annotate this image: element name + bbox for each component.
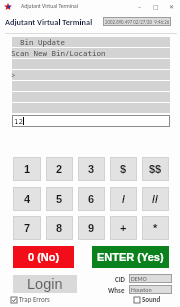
button[interactable]: Trap Errors xyxy=(11,295,50,304)
staticText: 3 xyxy=(88,163,95,175)
button[interactable]: / xyxy=(110,187,137,211)
button[interactable]: $$ xyxy=(142,157,169,181)
staticText: 9 xyxy=(88,222,95,234)
staticText: Bin Update xyxy=(11,37,65,47)
staticText: Adjutant Virtual Terminal xyxy=(5,17,93,27)
staticText: CID xyxy=(115,275,125,284)
staticText: 6 xyxy=(88,193,95,205)
button[interactable]: // xyxy=(142,187,169,211)
button[interactable]: 9 xyxy=(78,216,105,240)
staticText: ENTER (Yes) xyxy=(97,251,164,263)
staticText: + xyxy=(120,222,127,234)
button[interactable]: 4 xyxy=(13,187,41,211)
button[interactable]: Maximize xyxy=(148,0,164,13)
staticText: Houston xyxy=(131,286,152,293)
staticText: $$ xyxy=(149,163,162,175)
button[interactable]: 1 xyxy=(13,157,41,181)
staticText: / xyxy=(122,193,126,205)
staticText: Adjutant Virtual Terminal xyxy=(21,3,79,10)
staticText: > xyxy=(11,70,16,80)
button[interactable]: 12 xyxy=(12,115,170,127)
staticText: 2002.890.497 02/27/20 9:46:26 xyxy=(105,19,170,25)
button[interactable]: 2 xyxy=(46,157,73,181)
staticText: Whse xyxy=(108,286,125,295)
button[interactable]: Close xyxy=(164,0,180,13)
staticText: 4 xyxy=(24,193,31,205)
staticText: 2 xyxy=(56,163,63,175)
staticText: 7 xyxy=(24,222,31,234)
staticText: 1 xyxy=(24,163,31,175)
staticText: 8 xyxy=(56,222,63,234)
button[interactable]: Minimize xyxy=(132,0,148,13)
staticText: Sound xyxy=(142,295,161,304)
staticText: □ xyxy=(153,3,159,10)
staticText: 5 xyxy=(56,193,63,205)
staticText: DEMO xyxy=(131,275,147,282)
staticText: $ xyxy=(120,163,127,175)
button[interactable]: * xyxy=(142,216,169,240)
button[interactable]: 5 xyxy=(46,187,73,211)
staticText: Trap Errors xyxy=(19,295,50,304)
staticText: 0 (No) xyxy=(28,251,60,263)
staticText: – xyxy=(138,3,142,11)
button[interactable]: Login xyxy=(13,275,77,293)
button[interactable]: 7 xyxy=(13,216,41,240)
staticText: Scan New Bin/Location xyxy=(11,48,106,58)
staticText: Login xyxy=(27,276,63,292)
staticText: * xyxy=(153,222,158,234)
button[interactable]: 6 xyxy=(78,187,105,211)
staticText: 12 xyxy=(14,116,23,126)
button[interactable]: 0 (No) xyxy=(13,246,74,268)
button[interactable]: Sound xyxy=(134,295,161,304)
button[interactable]: ENTER (Yes) xyxy=(92,246,169,268)
button[interactable]: $ xyxy=(110,157,137,181)
button[interactable]: 3 xyxy=(78,157,105,181)
staticText: // xyxy=(152,193,159,205)
button[interactable]: 8 xyxy=(46,216,73,240)
staticText: ✕ xyxy=(169,3,175,10)
button[interactable]: + xyxy=(110,216,137,240)
